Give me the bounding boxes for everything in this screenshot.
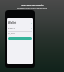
- staticText: straight from your wallet app: [17, 7, 47, 10]
- button[interactable]: [8, 37, 32, 40]
- staticText: Buy and sell crypto: [21, 3, 44, 6]
- staticText: Wallet: [8, 21, 17, 25]
- staticText: 0.0213: [8, 27, 15, 30]
- staticText: $1,204: [8, 32, 15, 35]
